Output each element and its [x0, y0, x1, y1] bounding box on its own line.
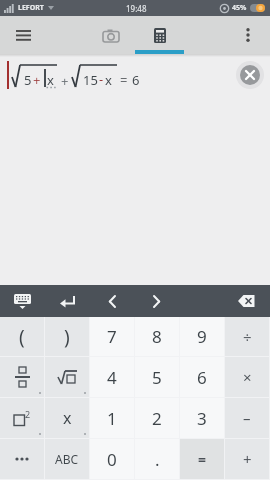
button[interactable]: 9 [180, 317, 224, 356]
button[interactable]: ) [45, 317, 89, 356]
button[interactable]: 8 [135, 317, 179, 356]
staticText: 9 [197, 325, 207, 348]
staticText: 2 [152, 407, 162, 430]
staticText: 19:48 [126, 3, 147, 14]
staticText: = [198, 450, 207, 469]
staticText: 15 [83, 71, 98, 89]
staticText: ) [64, 324, 70, 350]
staticText: × [243, 367, 252, 387]
staticText: 7 [107, 325, 117, 348]
button[interactable] [140, 285, 173, 317]
staticText: x [63, 407, 72, 429]
staticText: 5 [152, 366, 162, 389]
button[interactable] [0, 439, 44, 479]
staticText: + [61, 72, 69, 90]
staticText: = [120, 71, 128, 89]
staticText: 2 [25, 408, 31, 420]
button[interactable]: + [225, 439, 269, 479]
button[interactable]: 2 [135, 398, 179, 438]
staticText: LEFORT [18, 3, 44, 13]
button[interactable] [135, 16, 184, 54]
button[interactable]: 3 [180, 398, 224, 438]
button[interactable]: ABC [45, 439, 89, 479]
button[interactable]: – [225, 398, 269, 438]
button[interactable]: 4 [90, 357, 134, 397]
button[interactable] [0, 357, 44, 397]
staticText: 45% [232, 3, 247, 13]
staticText: ABC [55, 451, 79, 467]
button[interactable]: 6 [180, 357, 224, 397]
staticText: 6 [197, 366, 207, 389]
staticText: + [33, 71, 41, 89]
button[interactable]: 0 [90, 439, 134, 479]
button[interactable] [95, 285, 128, 317]
staticText: 6 [132, 71, 140, 89]
button[interactable]: x [45, 398, 89, 438]
button[interactable]: 2 [0, 398, 44, 438]
button[interactable]: × [225, 357, 269, 397]
button[interactable] [240, 65, 260, 85]
staticText: ( [19, 324, 25, 350]
staticText: – [243, 408, 251, 428]
button[interactable] [236, 23, 260, 47]
staticText: 1 [107, 407, 117, 430]
staticText: - [99, 70, 104, 88]
button[interactable]: ÷ [225, 317, 269, 356]
button[interactable] [8, 20, 38, 50]
button[interactable]: 5 [135, 357, 179, 397]
button[interactable] [45, 357, 89, 397]
staticText: x [47, 71, 54, 89]
button[interactable]: 7 [90, 317, 134, 356]
button[interactable]: 1 [90, 398, 134, 438]
button[interactable] [86, 16, 135, 54]
button[interactable]: . [135, 439, 179, 479]
staticText: x [105, 71, 112, 89]
staticText: . [155, 448, 160, 471]
staticText: 0 [107, 448, 117, 471]
button[interactable]: = [180, 439, 224, 479]
staticText: 8 [152, 325, 162, 348]
button[interactable] [51, 285, 84, 317]
staticText: ÷ [243, 327, 252, 347]
button[interactable] [229, 285, 265, 317]
button[interactable] [6, 285, 39, 317]
staticText: 3 [197, 407, 207, 430]
staticText: + [243, 449, 252, 469]
staticText: 4 [107, 366, 117, 389]
button[interactable]: ( [0, 317, 44, 356]
staticText: 5 [24, 71, 32, 89]
